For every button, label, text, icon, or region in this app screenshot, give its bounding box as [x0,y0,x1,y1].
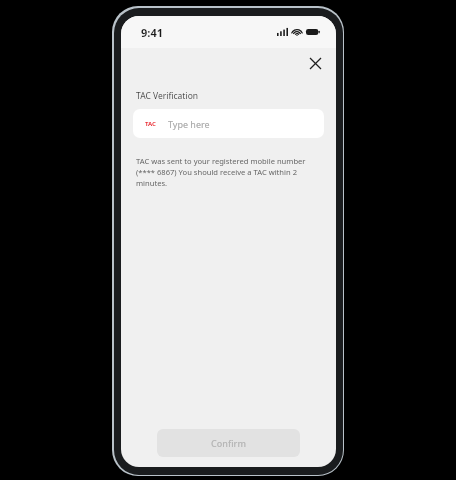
button[interactable]: Close [304,52,326,74]
staticText: 9:41 [141,25,163,40]
staticText: Type here [168,118,210,130]
staticText: TAC Verification [136,90,199,102]
button[interactable]: Confirm [157,429,300,457]
staticText: TAC [145,120,156,128]
staticText: Confirm [211,437,246,449]
staticText: TAC was sent to your registered mobile n… [136,156,320,188]
button[interactable]: TAC [133,109,324,138]
